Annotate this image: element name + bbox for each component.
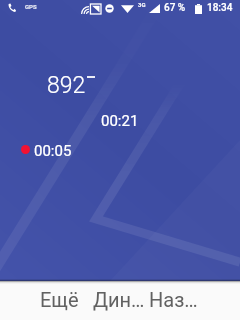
staticText: 00:21 (101, 112, 139, 130)
staticText: 892 (47, 72, 86, 99)
staticText: GPS (25, 3, 37, 10)
staticText: Наз… (149, 288, 198, 311)
other: Battery (195, 4, 202, 14)
button[interactable]: Наз… (145, 281, 202, 318)
other: Call (7, 3, 16, 12)
staticText: 67 % (164, 2, 186, 14)
staticText: 00:05 (34, 142, 72, 160)
staticText: 18:34 (207, 2, 233, 14)
button[interactable]: Дин… (89, 281, 149, 318)
button[interactable]: Ещё (36, 281, 83, 318)
staticText: Ещё (40, 288, 79, 311)
other: Signal (149, 4, 160, 13)
other: Cast (89, 4, 101, 14)
staticText: 3G (138, 1, 146, 8)
other: Do not disturb (105, 4, 114, 13)
staticText: Дин… (93, 288, 145, 311)
other: Wi-Fi (121, 4, 134, 13)
